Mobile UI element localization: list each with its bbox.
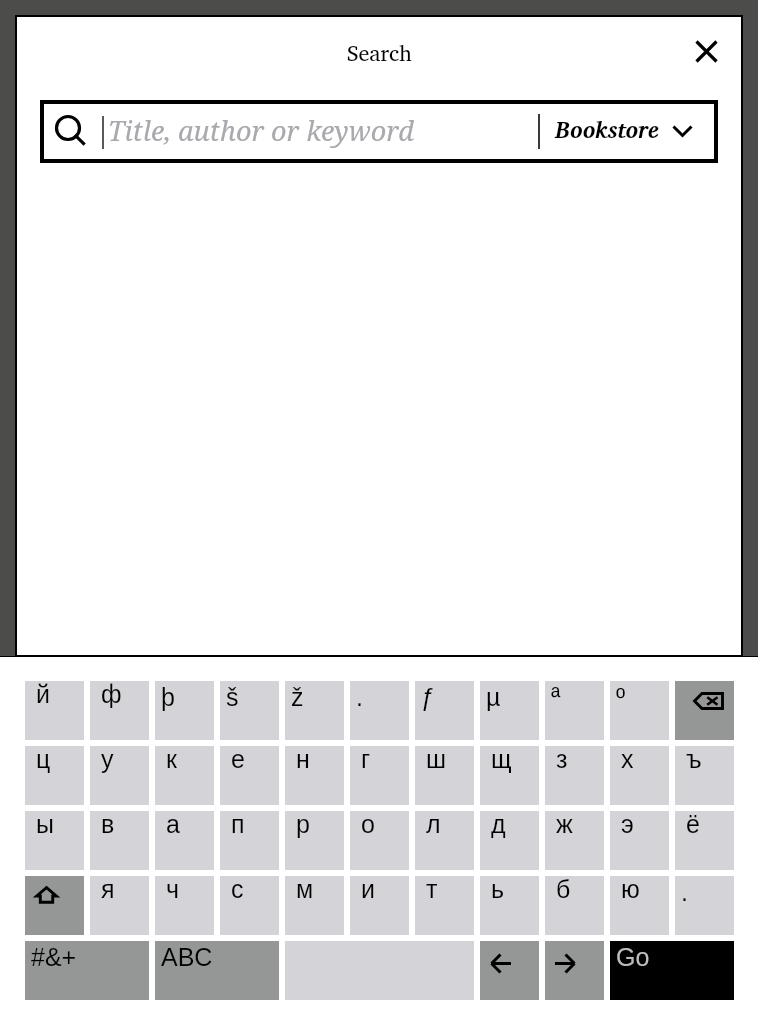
staticText: º xyxy=(616,683,626,711)
staticText: ч xyxy=(166,875,180,903)
staticText: и xyxy=(361,875,375,903)
button[interactable]: š xyxy=(220,681,279,740)
button[interactable]: е xyxy=(220,746,279,805)
button[interactable]: т xyxy=(415,876,474,935)
button[interactable]: . xyxy=(675,876,734,935)
staticText: д xyxy=(491,810,506,838)
button[interactable]: п xyxy=(220,811,279,870)
staticText: ю xyxy=(621,875,640,903)
staticText: ABC xyxy=(161,943,213,971)
button[interactable]: Go xyxy=(610,941,734,1000)
button[interactable]: Bookstore xyxy=(540,102,718,161)
staticText: в xyxy=(101,810,115,838)
staticText: Search xyxy=(347,35,412,63)
staticText: б xyxy=(556,875,571,903)
button[interactable]: µ xyxy=(480,681,539,740)
button[interactable]: ъ xyxy=(675,746,734,805)
staticText: т xyxy=(426,875,438,903)
staticText: ƒ xyxy=(421,683,435,711)
button[interactable]: ч xyxy=(155,876,214,935)
button[interactable]: Title, author or keyword xyxy=(40,100,718,163)
staticText: м xyxy=(296,875,314,903)
button[interactable]: ь xyxy=(480,876,539,935)
staticText: Title, author or keyword xyxy=(108,112,414,149)
button[interactable]: ы xyxy=(25,811,84,870)
button[interactable]: Symbols xyxy=(25,941,149,1000)
staticText: . xyxy=(681,878,688,906)
staticText: µ xyxy=(486,683,501,711)
button[interactable]: Cursor right xyxy=(545,941,604,1000)
button[interactable]: э xyxy=(610,811,669,870)
button[interactable]: у xyxy=(90,746,149,805)
button[interactable]: Close xyxy=(686,31,727,72)
button[interactable]: ш xyxy=(415,746,474,805)
staticText: я xyxy=(101,875,115,903)
button[interactable]: р xyxy=(285,811,344,870)
staticText: ы xyxy=(36,810,54,838)
staticText: с xyxy=(231,875,244,903)
staticText: ž xyxy=(291,683,304,711)
staticText: ц xyxy=(36,745,51,773)
staticText: й xyxy=(36,680,50,708)
staticText: Bookstore xyxy=(555,110,659,148)
staticText: ё xyxy=(686,810,700,838)
button[interactable]: º xyxy=(610,681,669,740)
button[interactable]: Cursor left xyxy=(480,941,539,1000)
button[interactable]: ё xyxy=(675,811,734,870)
staticText: ь xyxy=(491,875,505,903)
button[interactable]: щ xyxy=(480,746,539,805)
button[interactable]: к xyxy=(155,746,214,805)
staticText: з xyxy=(556,745,568,773)
staticText: ж xyxy=(556,810,573,838)
button[interactable]: з xyxy=(545,746,604,805)
button[interactable]: я xyxy=(90,876,149,935)
button[interactable]: þ xyxy=(155,681,214,740)
button[interactable]: г xyxy=(350,746,409,805)
button[interactable]: о xyxy=(350,811,409,870)
button[interactable]: л xyxy=(415,811,474,870)
staticText: ш xyxy=(426,745,447,773)
staticText: г xyxy=(361,745,371,773)
staticText: э xyxy=(621,810,634,838)
staticText: р xyxy=(296,810,310,838)
staticText: ª xyxy=(551,683,561,711)
staticText: þ xyxy=(161,683,175,711)
staticText: е xyxy=(231,745,245,773)
button[interactable]: б xyxy=(545,876,604,935)
staticText: . xyxy=(356,683,363,711)
staticText: о xyxy=(361,810,375,838)
staticText: п xyxy=(231,810,245,838)
staticText: у xyxy=(101,745,114,773)
button[interactable]: а xyxy=(155,811,214,870)
button[interactable]: н xyxy=(285,746,344,805)
button[interactable]: ABC xyxy=(155,941,279,1000)
button[interactable]: с xyxy=(220,876,279,935)
staticText: к xyxy=(166,745,177,773)
button[interactable]: ž xyxy=(285,681,344,740)
staticText: щ xyxy=(491,745,512,773)
button[interactable]: ж xyxy=(545,811,604,870)
button[interactable]: ª xyxy=(545,681,604,740)
button[interactable]: й xyxy=(25,681,84,740)
button[interactable]: и xyxy=(350,876,409,935)
staticText: ъ xyxy=(686,745,702,773)
button[interactable]: ф xyxy=(90,681,149,740)
button[interactable]: . xyxy=(350,681,409,740)
staticText: š xyxy=(226,683,239,711)
button[interactable]: м xyxy=(285,876,344,935)
staticText: ф xyxy=(101,680,122,708)
staticText: н xyxy=(296,745,310,773)
button[interactable]: в xyxy=(90,811,149,870)
button[interactable]: д xyxy=(480,811,539,870)
staticText: л xyxy=(426,810,441,838)
button[interactable]: Shift xyxy=(25,876,84,935)
button[interactable]: ю xyxy=(610,876,669,935)
button[interactable]: ƒ xyxy=(415,681,474,740)
staticText: х xyxy=(621,745,634,773)
button[interactable]: Backspace xyxy=(675,681,734,740)
button[interactable]: х xyxy=(610,746,669,805)
staticText: Go xyxy=(616,943,650,971)
button[interactable]: ц xyxy=(25,746,84,805)
staticText: #&+ xyxy=(31,943,77,971)
